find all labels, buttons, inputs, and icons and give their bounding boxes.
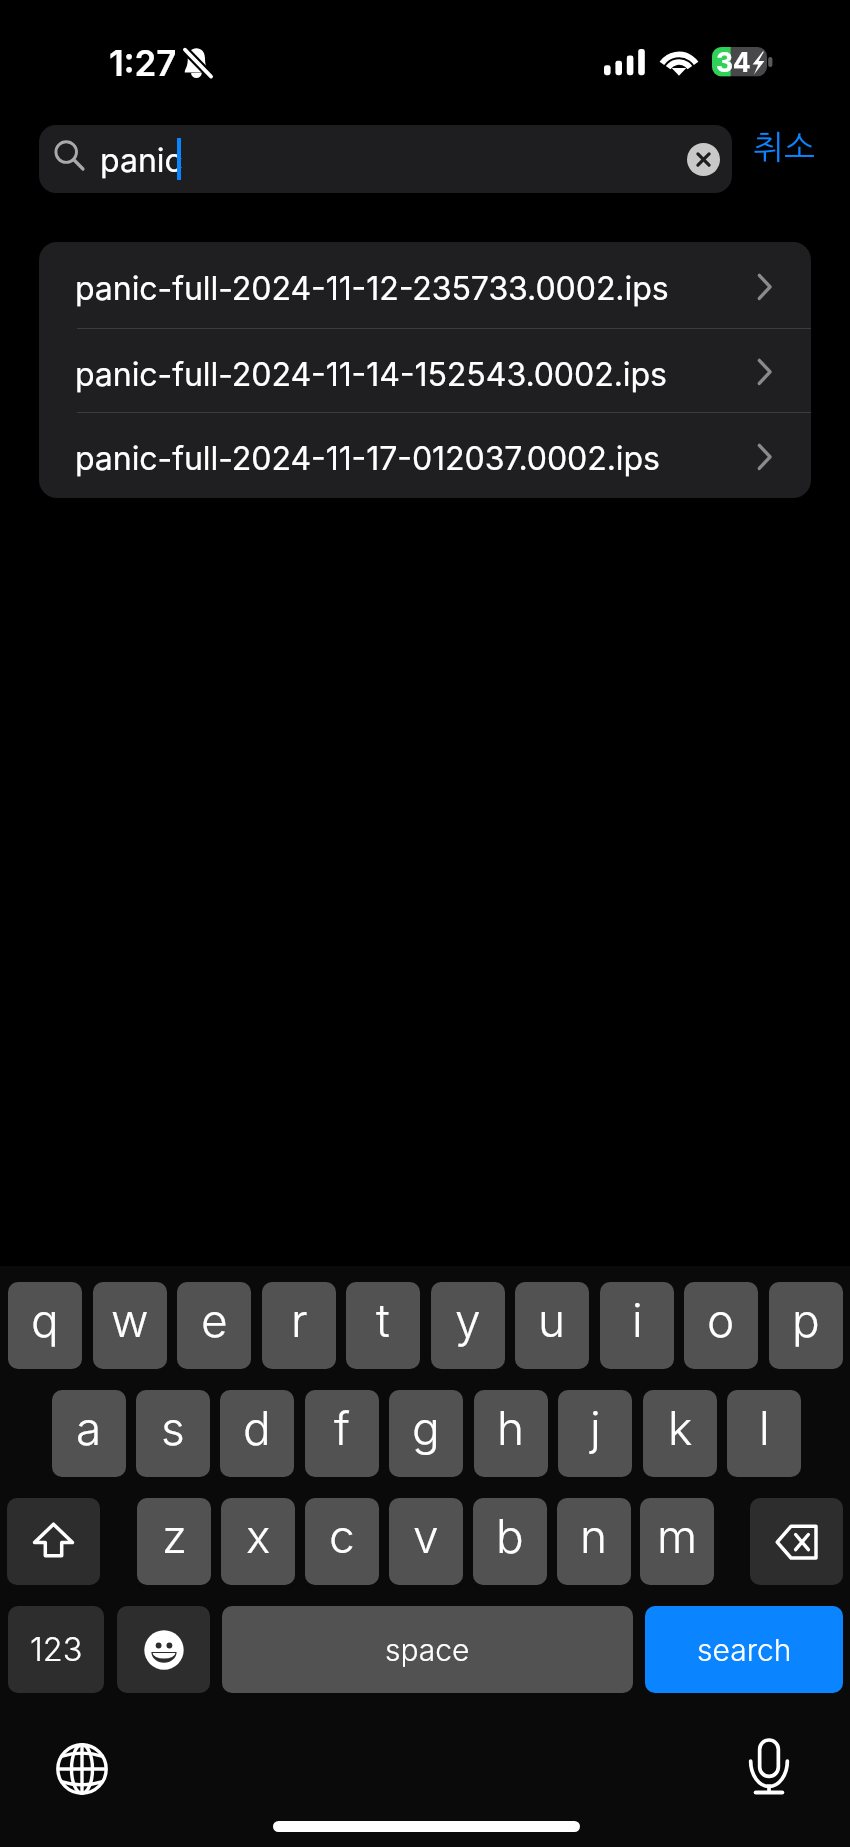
staticText: q [31, 1292, 59, 1348]
button[interactable]: m [640, 1498, 714, 1585]
staticText: search [697, 1632, 792, 1668]
button[interactable]: u [515, 1282, 589, 1369]
staticText: a [76, 1400, 102, 1456]
staticText: space [385, 1632, 470, 1668]
staticText: n [580, 1508, 608, 1564]
button[interactable]: Dictate [739, 1731, 799, 1801]
button[interactable]: Backspace [750, 1498, 843, 1585]
staticText: y [455, 1292, 481, 1348]
staticText: 34 [716, 46, 751, 78]
staticText: m [657, 1508, 698, 1564]
button[interactable]: k [643, 1390, 717, 1477]
staticText: i [632, 1292, 643, 1348]
button[interactable]: panic [39, 125, 732, 193]
staticText: k [668, 1400, 693, 1456]
button[interactable]: d [220, 1390, 294, 1477]
button[interactable]: o [684, 1282, 758, 1369]
staticText: r [291, 1292, 308, 1348]
button[interactable]: q [8, 1282, 82, 1369]
button[interactable]: s [136, 1390, 210, 1477]
button[interactable]: 123 [8, 1606, 104, 1693]
button[interactable]: panic-full-2024-11-17-012037.0002.ips [39, 413, 811, 498]
button[interactable]: r [262, 1282, 336, 1369]
button[interactable]: Emoji [117, 1606, 210, 1693]
button[interactable]: f [305, 1390, 379, 1477]
staticText: 123 [30, 1630, 83, 1669]
button[interactable]: n [557, 1498, 631, 1585]
staticText: z [162, 1508, 187, 1564]
button[interactable]: e [177, 1282, 251, 1369]
staticText: panic [100, 141, 183, 180]
button[interactable]: v [389, 1498, 463, 1585]
button[interactable]: p [769, 1282, 843, 1369]
button[interactable]: g [389, 1390, 463, 1477]
button[interactable]: Shift [7, 1498, 100, 1585]
button[interactable]: l [727, 1390, 801, 1477]
button[interactable]: i [600, 1282, 674, 1369]
button[interactable]: z [137, 1498, 211, 1585]
staticText: t [376, 1292, 390, 1348]
button[interactable]: 취소 [753, 131, 816, 164]
staticText: panic-full-2024-11-17-012037.0002.ips [75, 439, 660, 478]
staticText: o [707, 1292, 735, 1348]
staticText: v [413, 1508, 439, 1564]
staticText: f [334, 1400, 350, 1456]
button[interactable]: Change keyboard [52, 1739, 112, 1799]
staticText: s [161, 1400, 185, 1456]
staticText: p [792, 1292, 820, 1348]
button[interactable]: panic-full-2024-11-12-235733.0002.ips [39, 242, 811, 329]
staticText: 취소 [753, 131, 816, 164]
button[interactable]: panic-full-2024-11-14-152543.0002.ips [39, 329, 811, 413]
button[interactable]: b [473, 1498, 547, 1585]
button[interactable]: space [222, 1606, 633, 1693]
button[interactable]: t [346, 1282, 420, 1369]
staticText: panic-full-2024-11-14-152543.0002.ips [75, 355, 667, 394]
button[interactable]: a [52, 1390, 126, 1477]
button[interactable]: j [558, 1390, 632, 1477]
staticText: u [538, 1292, 566, 1348]
staticText: e [201, 1292, 228, 1348]
staticText: j [590, 1400, 601, 1456]
staticText: d [243, 1400, 271, 1456]
staticText: 1:27 [109, 42, 177, 84]
staticText: h [497, 1400, 525, 1456]
button[interactable]: c [305, 1498, 379, 1585]
staticText: panic-full-2024-11-12-235733.0002.ips [75, 269, 669, 308]
button[interactable]: search [645, 1606, 843, 1693]
staticText: w [111, 1292, 149, 1348]
staticText: c [329, 1508, 355, 1564]
button[interactable]: h [474, 1390, 548, 1477]
button[interactable]: x [221, 1498, 295, 1585]
staticText: g [412, 1400, 440, 1456]
button[interactable]: Clear text [687, 143, 720, 176]
staticText: b [496, 1508, 524, 1564]
staticText: l [759, 1400, 770, 1456]
button[interactable]: y [431, 1282, 505, 1369]
button[interactable]: w [93, 1282, 167, 1369]
staticText: x [246, 1508, 271, 1564]
